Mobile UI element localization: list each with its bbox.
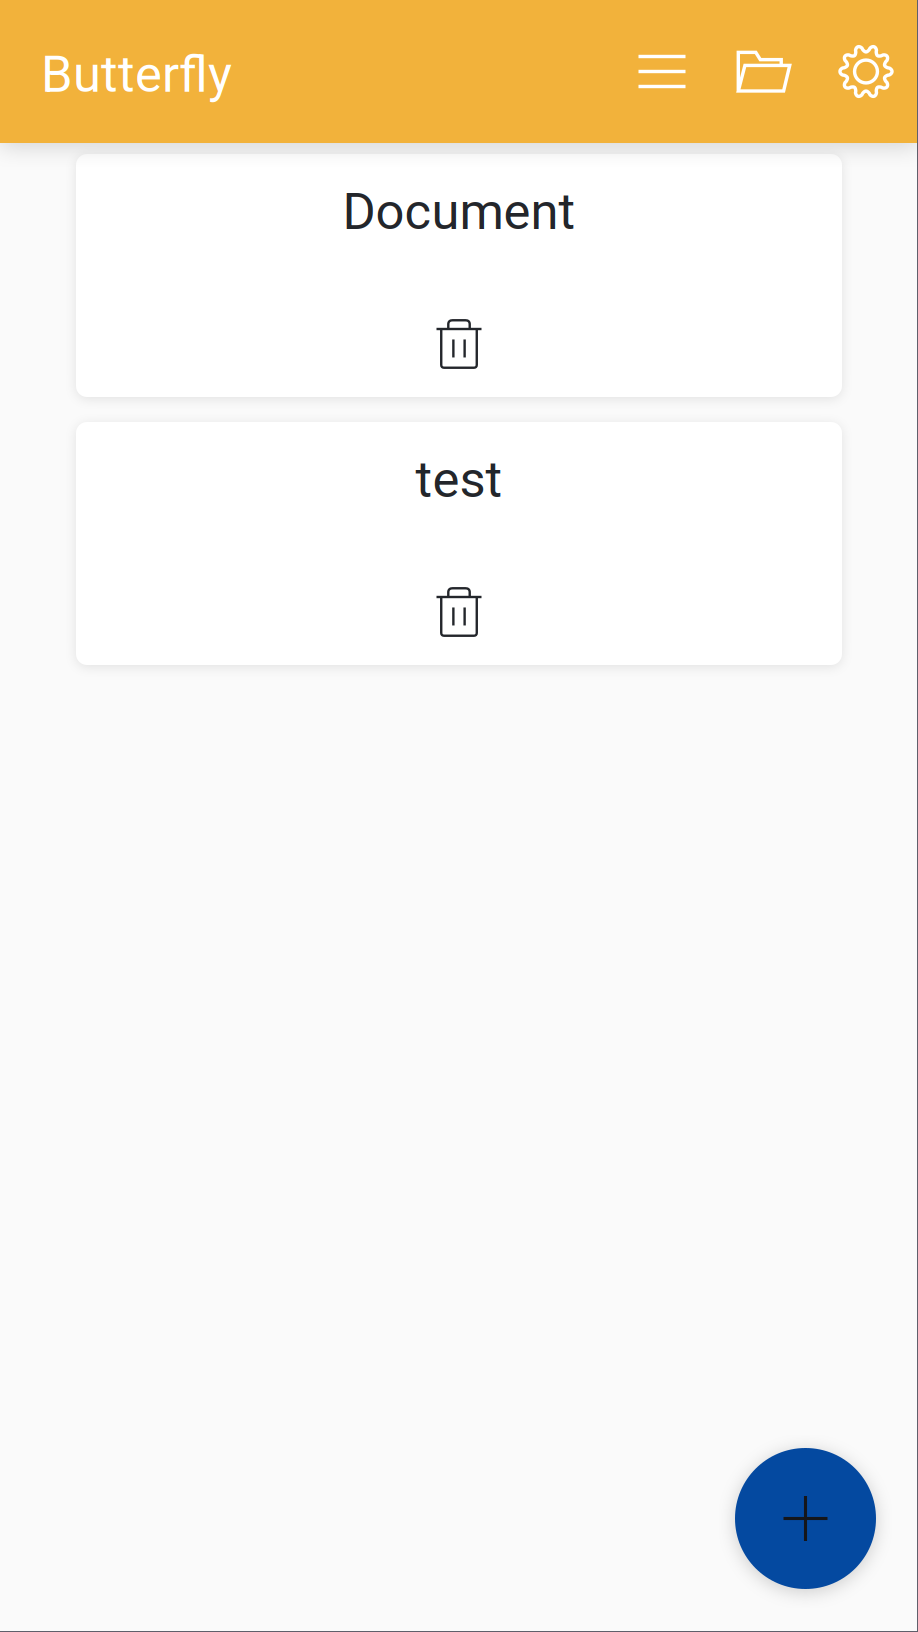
button[interactable]: Delete Document — [426, 310, 491, 378]
button[interactable]: Add document — [735, 1448, 876, 1589]
button[interactable]: test — [76, 422, 842, 665]
button[interactable]: Document — [76, 154, 842, 397]
button[interactable]: Delete test — [426, 578, 491, 646]
staticText: Document — [342, 182, 575, 241]
button[interactable]: Open folder — [716, 23, 812, 119]
staticText: test — [415, 450, 502, 509]
staticText: Butterfly — [41, 45, 232, 104]
button[interactable]: Menu — [614, 23, 710, 119]
button[interactable]: Settings — [818, 23, 914, 119]
